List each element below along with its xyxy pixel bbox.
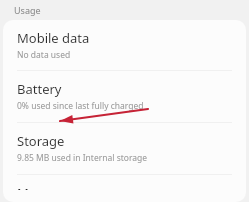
button[interactable]: Memory: [3, 175, 246, 202]
button[interactable]: Mobile data: [3, 20, 246, 70]
staticText: 9.85 MB used in Internal storage: [17, 152, 148, 164]
staticText: No data used: [17, 49, 71, 61]
staticText: Mobile data: [17, 29, 90, 47]
button[interactable]: Battery: [3, 71, 246, 122]
staticText: Battery: [17, 80, 62, 98]
staticText: Memory: [17, 184, 69, 190]
staticText: Storage: [17, 132, 65, 150]
staticText: 0% used since last fully charged: [17, 100, 144, 112]
staticText: Usage: [14, 4, 41, 16]
button[interactable]: Storage: [3, 123, 246, 174]
